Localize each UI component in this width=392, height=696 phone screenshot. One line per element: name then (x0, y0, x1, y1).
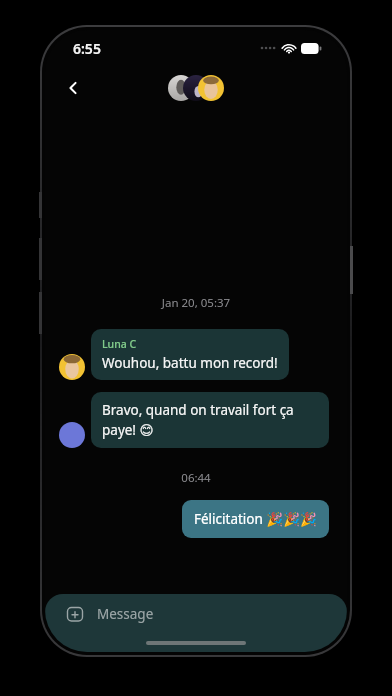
button[interactable]: Luna C (59, 329, 329, 380)
staticText: Message (97, 605, 154, 623)
staticText: Bravo, quand on travail fort ça paye! 😊 (102, 401, 318, 439)
staticText: Luna C (102, 337, 137, 351)
button[interactable]: Félicitation 🎉🎉🎉 (45, 500, 329, 538)
button[interactable]: Add attachment (65, 604, 85, 624)
staticText: Félicitation 🎉🎉🎉 (194, 510, 317, 528)
button[interactable]: Conversation members (166, 73, 226, 103)
button[interactable]: Add attachment (45, 594, 347, 652)
button[interactable]: Back (53, 68, 93, 108)
staticText: Jan 20, 05:37 (45, 295, 347, 311)
staticText: 6:55 (73, 39, 101, 58)
button[interactable]: Bravo, quand on travail fort ça paye! 😊 (59, 392, 329, 448)
staticText: Wouhou, battu mon record! (102, 354, 278, 372)
staticText: 06:44 (45, 470, 347, 486)
